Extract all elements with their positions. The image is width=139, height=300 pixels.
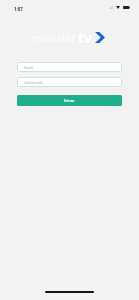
staticText: Entrar — [64, 98, 75, 103]
staticText: Contraseña — [24, 80, 43, 85]
staticText: movistar — [31, 30, 77, 45]
staticText: 1:07 — [14, 6, 23, 12]
button[interactable]: Contraseña — [17, 77, 122, 87]
button[interactable]: Entrar — [17, 95, 122, 106]
staticText: Email — [24, 65, 33, 70]
staticText: tv — [78, 28, 93, 47]
button[interactable]: Email — [17, 62, 122, 72]
